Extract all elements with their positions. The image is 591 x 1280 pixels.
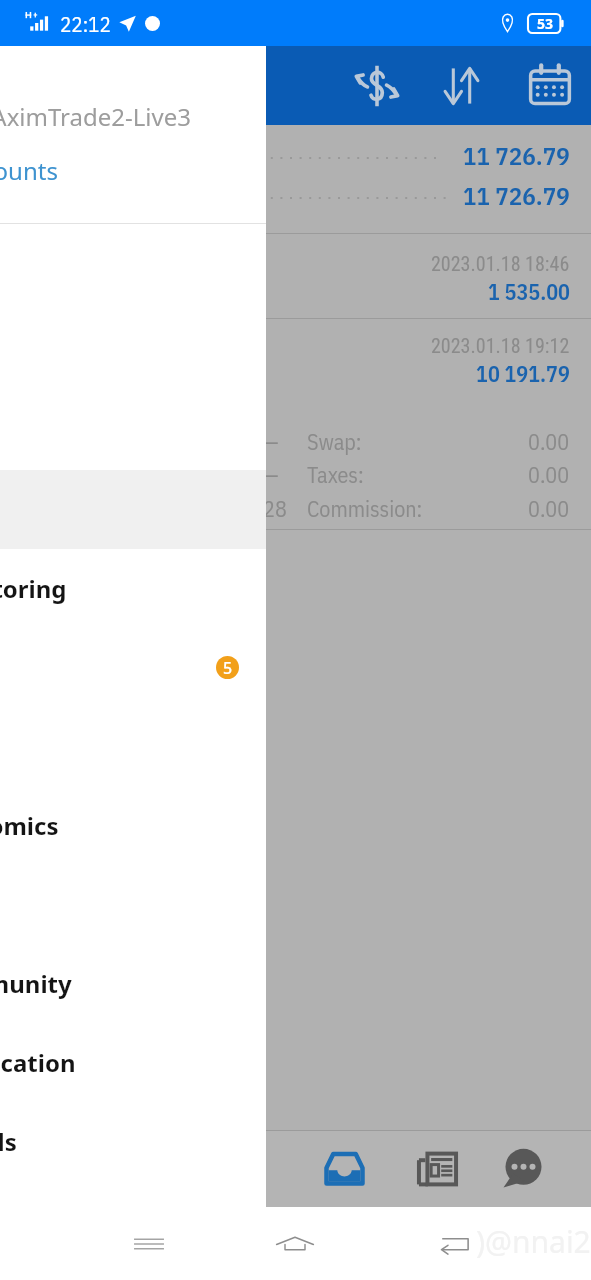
button[interactable]: Economics [0, 786, 266, 865]
staticText: Manage accounts [0, 154, 58, 187]
staticText: 2023.01.18 18:46 [431, 252, 570, 275]
button[interactable]: Community [0, 944, 266, 1023]
staticText: Swap: [307, 427, 362, 456]
staticText: 2023.01.18 19:12 [431, 334, 570, 357]
button[interactable]: Calendar [510, 46, 589, 125]
button[interactable]: Mailbox [301, 1131, 387, 1207]
staticText: 1 535.00 [488, 277, 570, 306]
staticText: 9087394 - AximTrade2-Live3 [0, 100, 191, 133]
staticText: — [263, 460, 279, 489]
staticText: 0.00 [528, 460, 570, 489]
button[interactable]: Manage accounts [0, 146, 266, 206]
staticText: 22:12 [60, 10, 111, 37]
staticText: Taxes: [307, 460, 364, 489]
button[interactable]: Recent apps [127, 1222, 171, 1266]
staticText: 11 726.79 [463, 139, 570, 172]
staticText: Commission: [307, 494, 423, 523]
staticText: Notification [0, 1046, 76, 1079]
staticText: 28 [263, 494, 287, 523]
button[interactable]: News [394, 1131, 480, 1207]
staticText: Signals [0, 1125, 17, 1158]
staticText: 0.00 [528, 494, 570, 523]
staticText: Monitoring [0, 572, 67, 605]
button[interactable]: Chat [0, 628, 266, 707]
staticText: — [263, 427, 279, 456]
staticText: 53 [537, 14, 554, 33]
staticText: )@nnai21 [476, 1221, 591, 1262]
staticText: Community [0, 967, 72, 1000]
button[interactable]: Signals [0, 1102, 266, 1181]
button[interactable]: Currency exchange [337, 46, 416, 125]
staticText: Economics [0, 809, 59, 842]
button[interactable]: Back [431, 1222, 475, 1266]
button[interactable]: Chat [479, 1131, 565, 1207]
button[interactable]: Sort [422, 46, 501, 125]
staticText: 0.00 [528, 427, 570, 456]
staticText: 5 [223, 657, 233, 679]
staticText: 11 726.79 [463, 179, 570, 212]
button[interactable]: Monitoring [0, 549, 266, 628]
staticText: 10 191.79 [476, 359, 570, 388]
button[interactable]: Notification [0, 1023, 266, 1102]
button[interactable]: Home [273, 1222, 317, 1266]
